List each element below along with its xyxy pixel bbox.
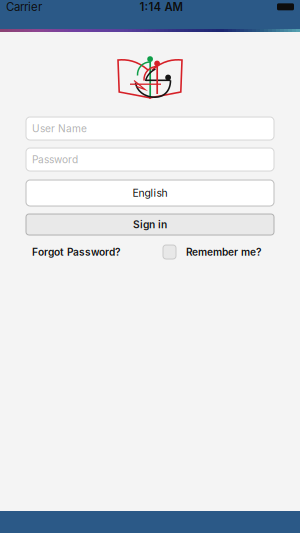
staticText: 1:14 AM: [139, 0, 182, 14]
button[interactable]: Sign in: [26, 214, 274, 235]
staticText: Forgot Password?: [32, 246, 121, 258]
button[interactable]: Password: [26, 148, 274, 171]
staticText: User Name: [32, 122, 87, 135]
button[interactable]: English: [26, 180, 274, 206]
button[interactable]: Forgot Password?: [32, 245, 121, 259]
button[interactable]: User Name: [26, 117, 274, 140]
staticText: Carrier: [6, 0, 42, 14]
button[interactable]: Remember me?: [163, 245, 262, 259]
staticText: English: [132, 187, 167, 199]
staticText: Sign in: [133, 218, 167, 231]
staticText: Remember me?: [186, 246, 262, 258]
staticText: Password: [32, 153, 78, 166]
